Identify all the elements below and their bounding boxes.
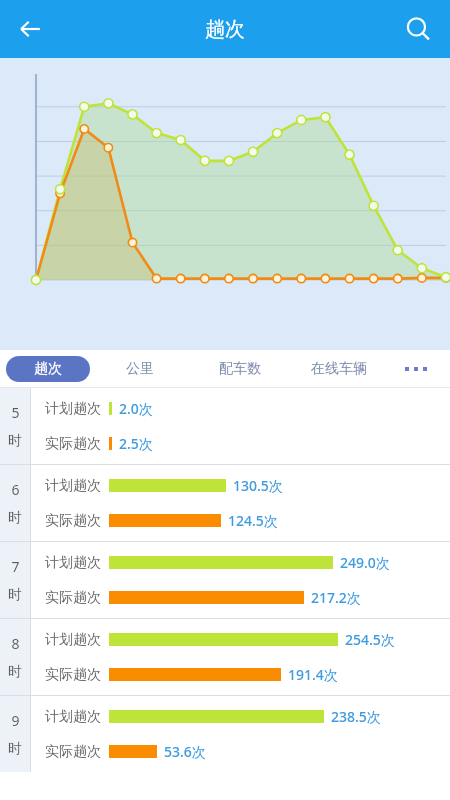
staticText: 实际趟次 bbox=[45, 666, 101, 684]
button[interactable]: 5 bbox=[0, 388, 450, 464]
staticText: 公里 bbox=[126, 360, 154, 378]
button[interactable]: Back bbox=[6, 5, 54, 53]
staticText: 在线车辆 bbox=[311, 360, 367, 378]
staticText: 217.2次 bbox=[311, 588, 361, 607]
staticText: 配车数 bbox=[219, 360, 261, 378]
staticText: 计划趟次 bbox=[45, 708, 101, 726]
staticText: 计划趟次 bbox=[45, 400, 101, 418]
staticText: 7 bbox=[11, 557, 20, 576]
staticText: 124.5次 bbox=[228, 511, 278, 530]
button[interactable]: 趟次 bbox=[6, 356, 90, 382]
button[interactable]: 在线车辆 bbox=[289, 350, 388, 388]
staticText: 8 bbox=[11, 634, 20, 653]
staticText: 实际趟次 bbox=[45, 743, 101, 761]
staticText: 时 bbox=[8, 740, 22, 758]
button[interactable]: 公里 bbox=[90, 350, 190, 388]
staticText: 53.6次 bbox=[164, 742, 206, 761]
staticText: 238.5次 bbox=[331, 707, 381, 726]
staticText: 趟次 bbox=[34, 360, 62, 378]
staticText: 计划趟次 bbox=[45, 631, 101, 649]
staticText: 趟次 bbox=[205, 17, 245, 42]
staticText: 9 bbox=[11, 711, 20, 730]
staticText: 6 bbox=[11, 480, 20, 499]
staticText: 时 bbox=[8, 509, 22, 527]
button[interactable]: 7 bbox=[0, 542, 450, 618]
staticText: 249.0次 bbox=[340, 553, 390, 572]
button[interactable]: 配车数 bbox=[190, 350, 289, 388]
button[interactable]: 9 bbox=[0, 696, 450, 772]
staticText: 2.5次 bbox=[119, 434, 153, 453]
staticText: 5 bbox=[11, 403, 20, 422]
staticText: 计划趟次 bbox=[45, 554, 101, 572]
staticText: 130.5次 bbox=[233, 476, 283, 495]
staticText: 实际趟次 bbox=[45, 512, 101, 530]
staticText: 254.5次 bbox=[345, 630, 395, 649]
button[interactable]: More tabs bbox=[388, 350, 444, 388]
staticText: 计划趟次 bbox=[45, 477, 101, 495]
staticText: 实际趟次 bbox=[45, 589, 101, 607]
button[interactable]: 6 bbox=[0, 465, 450, 541]
staticText: 时 bbox=[8, 432, 22, 450]
staticText: 191.4次 bbox=[288, 665, 338, 684]
staticText: 时 bbox=[8, 663, 22, 681]
staticText: 实际趟次 bbox=[45, 435, 101, 453]
button[interactable]: 8 bbox=[0, 619, 450, 695]
button[interactable]: Search bbox=[394, 5, 442, 53]
staticText: 2.0次 bbox=[119, 399, 153, 418]
staticText: 时 bbox=[8, 586, 22, 604]
